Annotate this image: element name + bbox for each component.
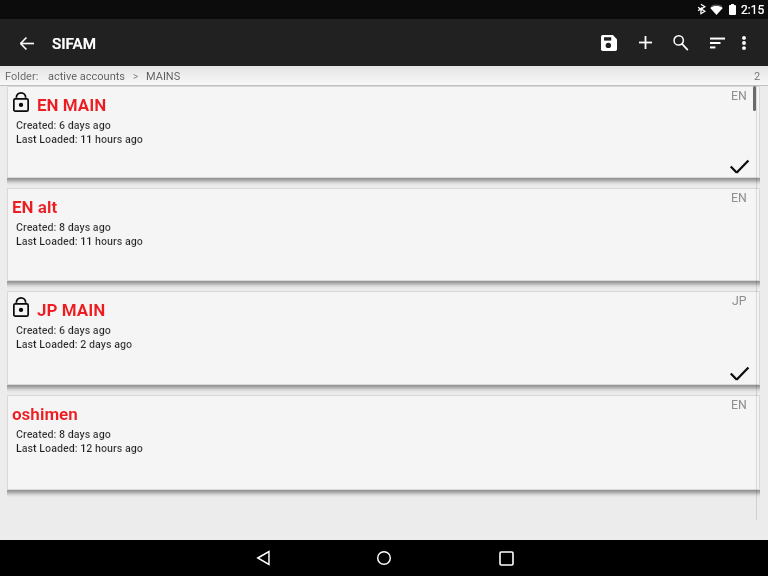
staticText: Created: 8 days ago [16,428,111,441]
staticText: Last Loaded: 11 hours ago [16,133,143,146]
button[interactable]: EN MAIN [7,86,760,178]
button[interactable]: oshimen [7,395,760,490]
staticText: JP [732,294,747,308]
staticText: Created: 6 days ago [16,324,111,337]
staticText: Created: 8 days ago [16,221,111,234]
button[interactable]: Search [662,19,698,66]
staticText: Last Loaded: 2 days ago [16,338,133,351]
button[interactable]: Back [233,540,293,576]
staticText: active accounts [48,70,126,83]
button[interactable]: More options [729,19,759,66]
staticText: 2 [754,70,761,83]
staticText: SIFAM [52,35,97,53]
button[interactable]: Sort [699,19,735,66]
button[interactable]: JP MAIN [7,291,760,385]
staticText: JP MAIN [37,300,106,320]
staticText: EN [731,89,747,103]
staticText: Folder: [5,70,39,83]
staticText: Last Loaded: 11 hours ago [16,235,143,248]
staticText: EN MAIN [37,95,107,115]
button[interactable]: Recent apps [476,540,536,576]
button[interactable]: EN alt [7,188,760,281]
staticText: oshimen [12,404,78,424]
staticText: Created: 6 days ago [16,119,111,132]
button[interactable]: Add [627,19,663,66]
staticText: > [133,71,139,83]
staticText: EN alt [12,197,58,217]
button[interactable]: Save [591,19,627,66]
staticText: MAINS [146,70,181,83]
staticText: 2:15 [741,3,765,17]
staticText: Last Loaded: 12 hours ago [16,442,143,455]
button[interactable]: Home [354,540,414,576]
staticText: EN [731,191,747,205]
button[interactable]: Folder: [0,66,768,86]
button[interactable]: Back [0,19,54,66]
staticText: EN [731,398,747,412]
